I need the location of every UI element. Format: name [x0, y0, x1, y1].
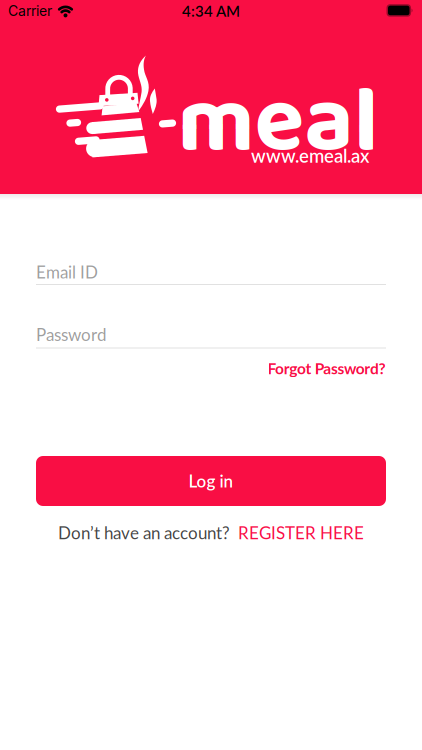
staticText: Email ID [36, 262, 98, 282]
staticText: www.emeal.ax [251, 144, 369, 167]
button[interactable]: Forgot Password? [267, 359, 385, 378]
button[interactable]: REGISTER HERE [238, 522, 364, 543]
button[interactable]: Log in [36, 456, 386, 506]
staticText: REGISTER HERE [238, 522, 364, 543]
staticText: Carrier [8, 2, 52, 19]
staticText: Don’t have an account? [58, 522, 230, 543]
staticText: 4:34 AM [182, 2, 240, 20]
staticText: Forgot Password? [267, 359, 385, 378]
staticText: meal [177, 50, 378, 197]
staticText: Log in [188, 471, 233, 491]
staticText: Password [36, 324, 107, 344]
